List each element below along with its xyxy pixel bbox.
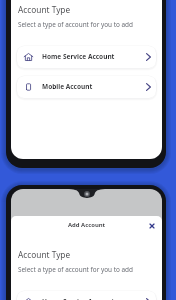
staticText: Mobile Account (42, 82, 93, 91)
staticText: Home Service Account (42, 52, 115, 61)
button[interactable]: Mobile Account (17, 76, 156, 98)
button[interactable]: Close (146, 220, 158, 232)
staticText: Account Type (18, 4, 71, 15)
staticText: Select a type of account for you to add (18, 265, 133, 274)
staticText: Home Service Account (42, 297, 115, 300)
staticText: Add Account (68, 221, 106, 229)
staticText: Select a type of account for you to add (18, 20, 133, 29)
staticText: Account Type (18, 249, 71, 260)
button[interactable]: Home Service Account (17, 46, 156, 68)
button[interactable]: Home Service Account (17, 291, 156, 300)
